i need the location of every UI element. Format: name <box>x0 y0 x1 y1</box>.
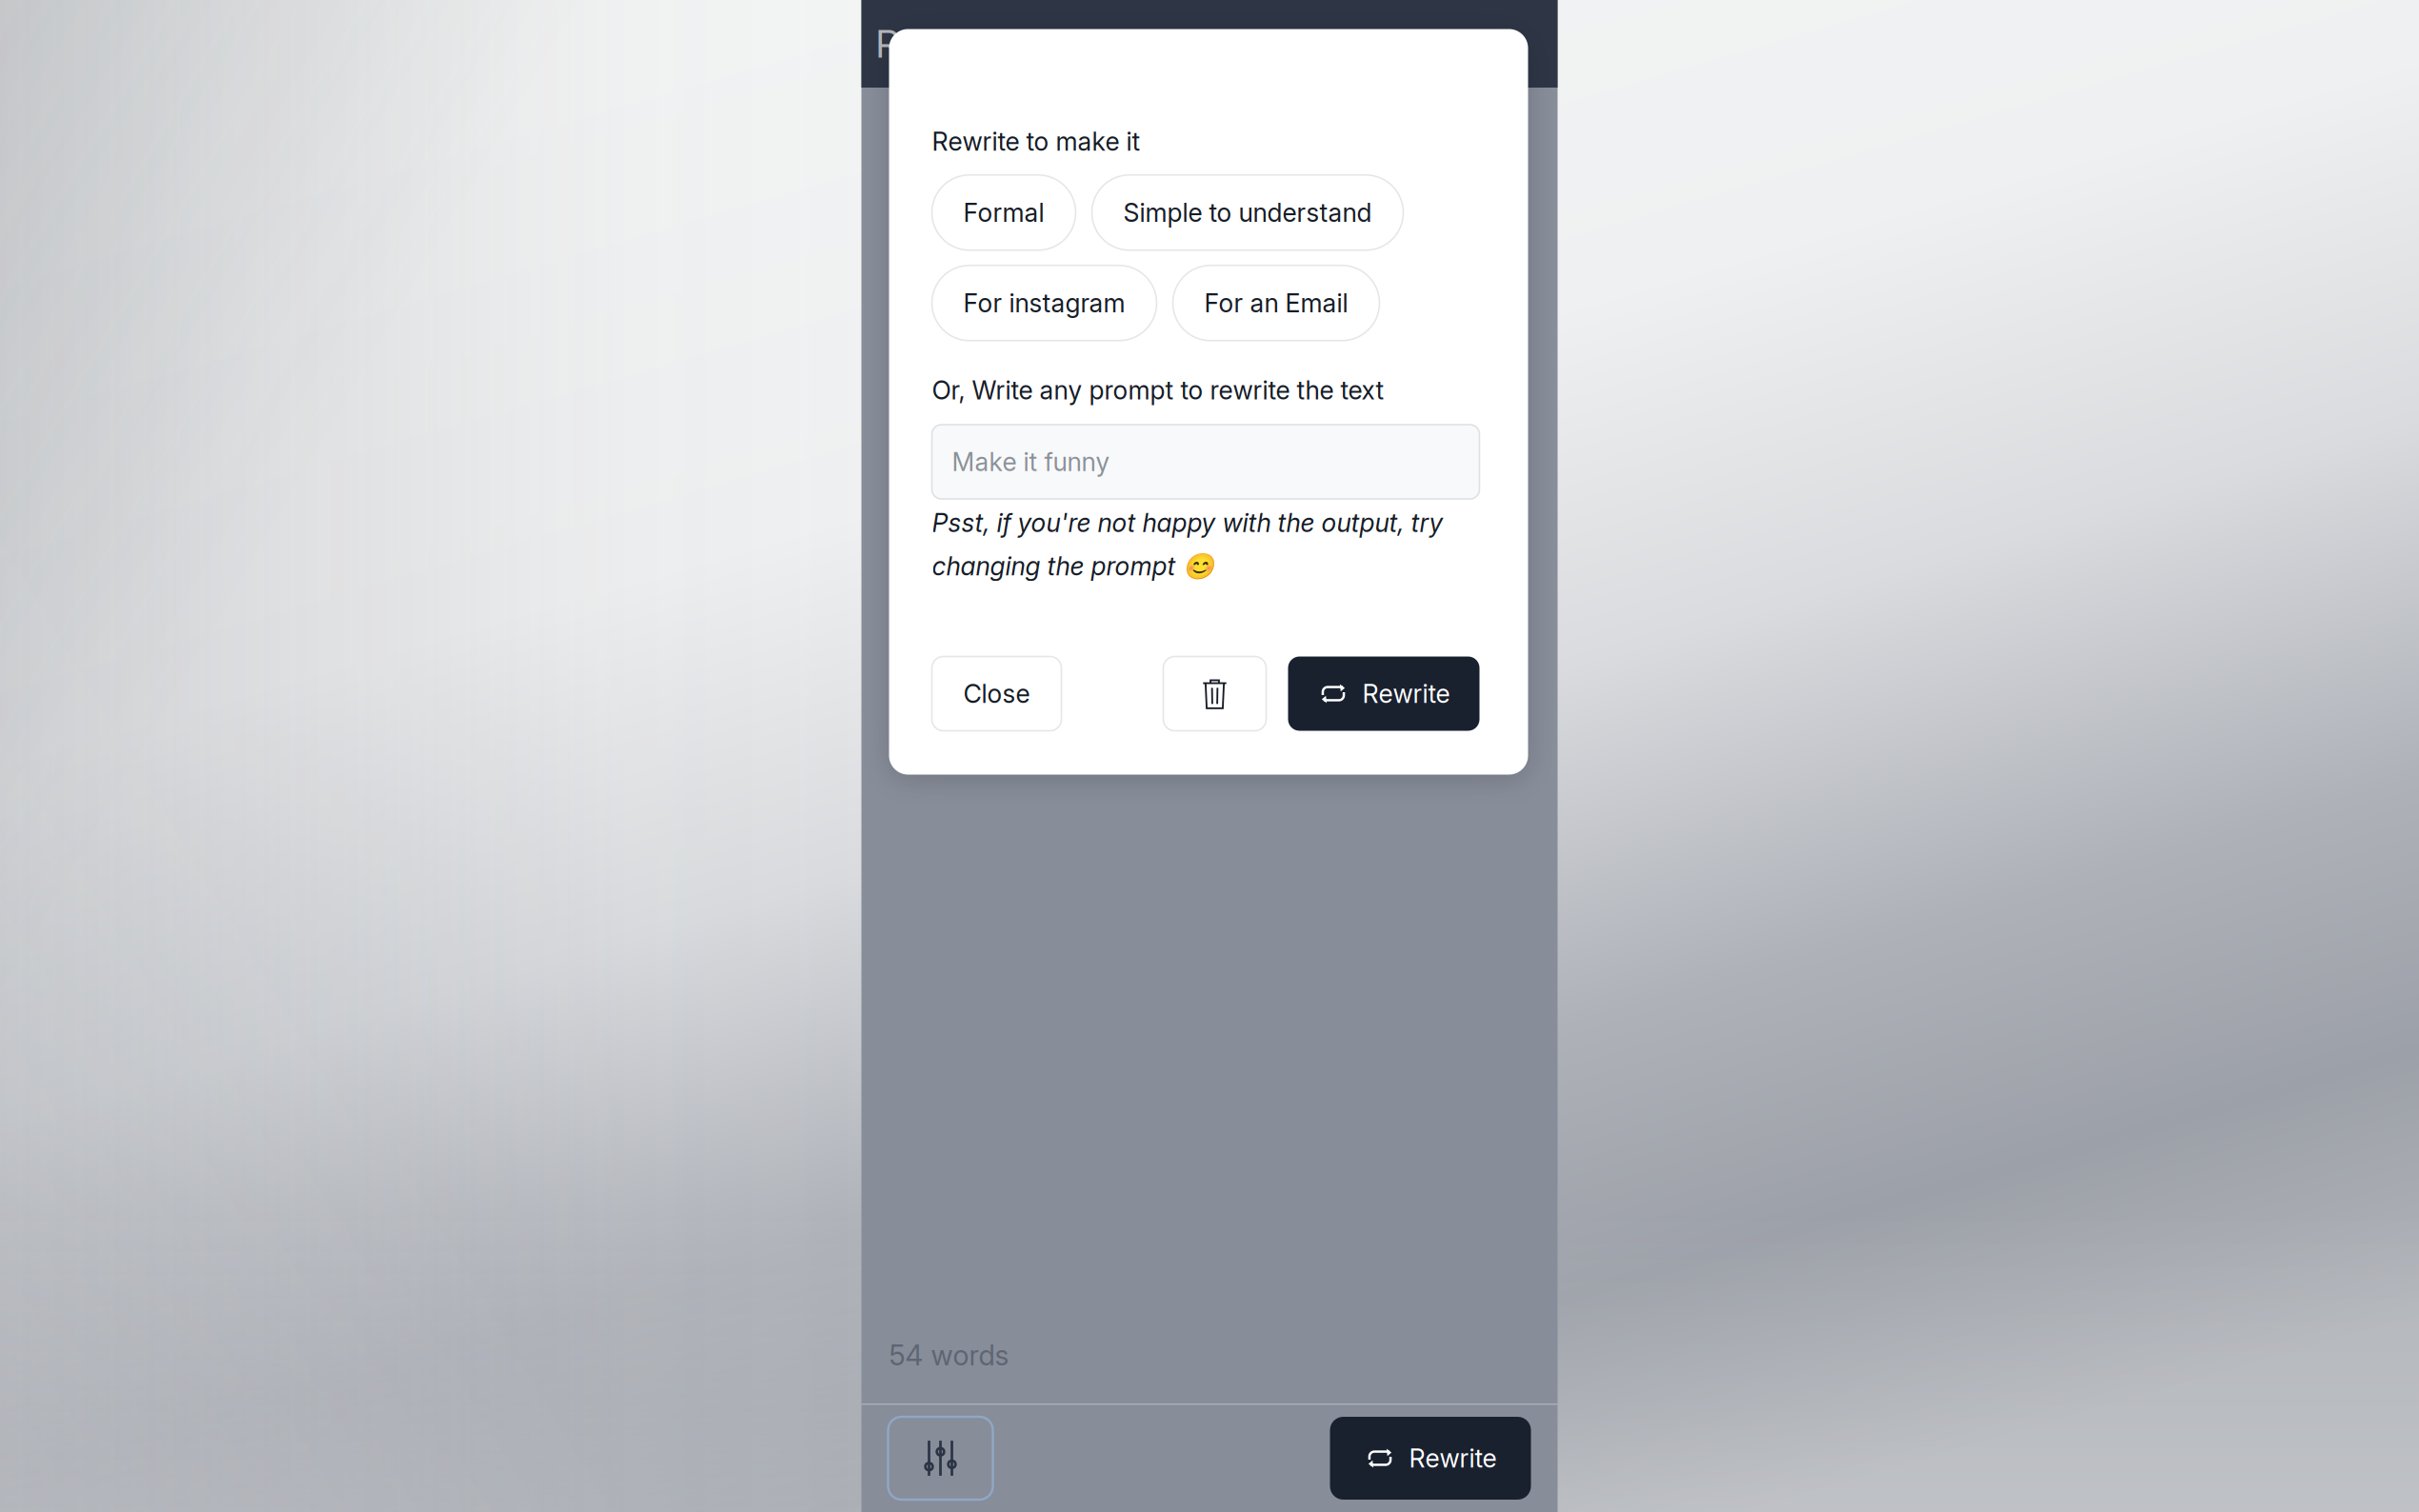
staticText: Rewrite <box>1362 678 1450 709</box>
button[interactable]: Simple to understand <box>1092 175 1403 250</box>
staticText: Close <box>963 678 1030 709</box>
button[interactable]: Formal <box>932 175 1076 250</box>
staticText: For an Email <box>1204 288 1348 318</box>
button[interactable]: For an Email <box>1173 265 1379 341</box>
staticText: Formal <box>963 197 1044 228</box>
button[interactable]: Rewrite options <box>888 1417 993 1500</box>
button[interactable]: For instagram <box>932 265 1157 341</box>
staticText: Rewrite <box>1409 1443 1497 1474</box>
button[interactable]: Rewrite <box>1288 657 1479 731</box>
staticText: Or, Write any prompt to rewrite the text <box>932 375 1384 406</box>
button[interactable]: Clear <box>1163 657 1266 731</box>
staticText: Simple to understand <box>1123 197 1372 228</box>
staticText: Rewrite to make it <box>932 126 1140 157</box>
staticText: For instagram <box>963 288 1125 318</box>
staticText: Make it funny <box>952 446 1110 477</box>
staticText: 54 words <box>889 1338 1009 1372</box>
button[interactable]: Close <box>932 657 1061 731</box>
button[interactable]: Rewrite <box>1330 1417 1531 1500</box>
staticText: Rewrite <box>876 21 1001 67</box>
staticText: Psst, if you're not happy with the outpu… <box>932 507 1443 581</box>
